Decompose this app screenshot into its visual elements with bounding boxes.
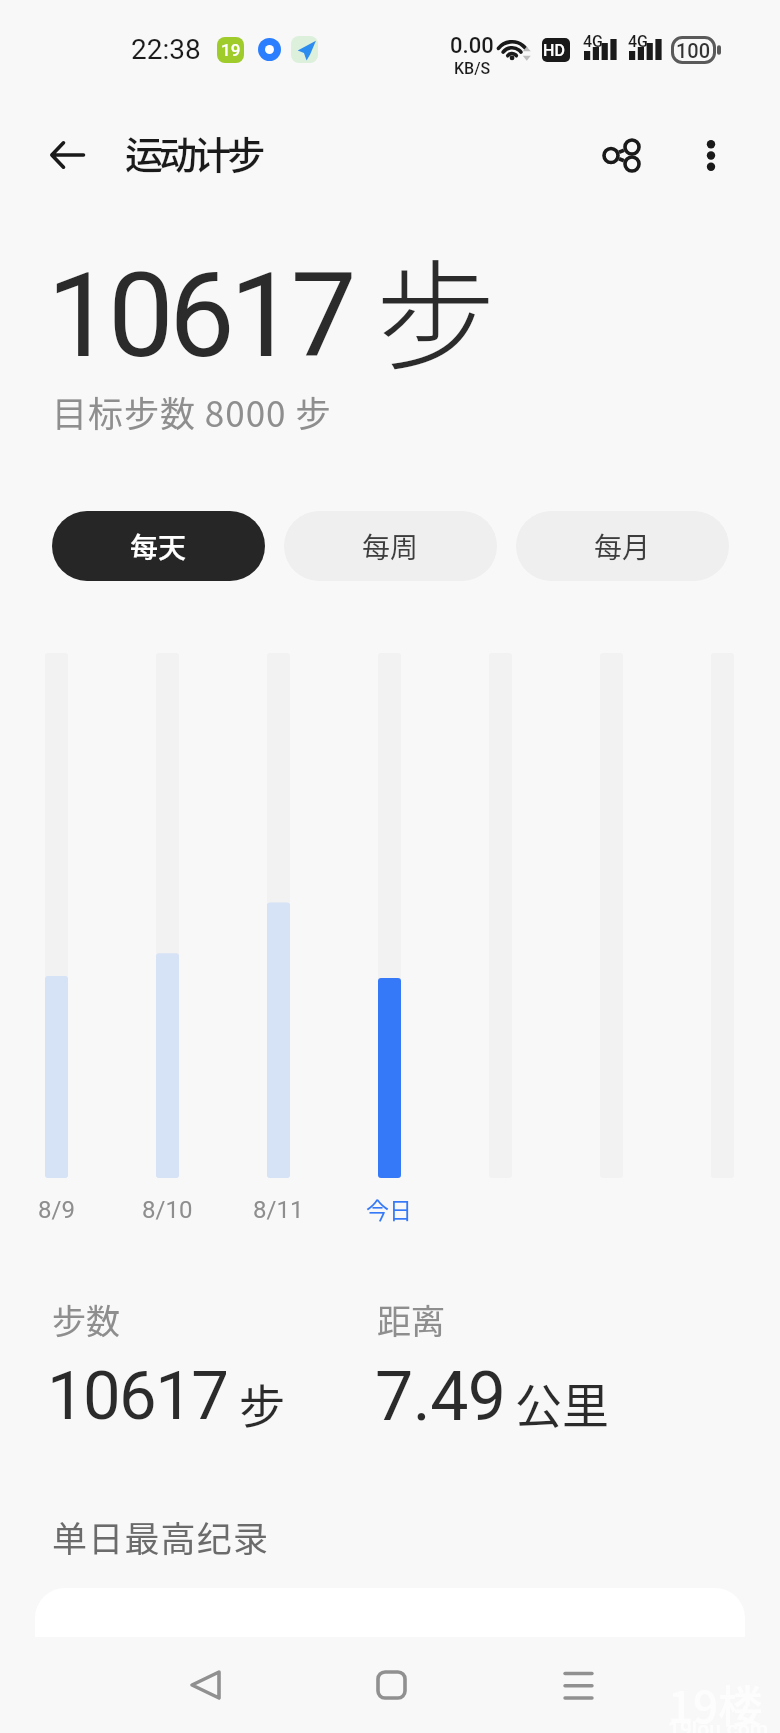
staticText: 10617	[47, 247, 352, 384]
staticText: 19	[221, 40, 241, 60]
staticText: 0.00	[450, 33, 494, 59]
button[interactable]: 每周	[284, 511, 497, 581]
button[interactable]: Back	[159, 1639, 251, 1731]
staticText: 7.49	[375, 1357, 506, 1437]
button[interactable]: Back	[31, 119, 103, 191]
staticText: 步	[376, 222, 495, 394]
staticText: 运动计步	[125, 125, 262, 180]
staticText: 4G	[628, 32, 648, 51]
staticText: HD	[543, 41, 565, 60]
staticText: 100	[676, 39, 711, 62]
button[interactable]: More options	[673, 117, 749, 193]
staticText: 目标步数 8000 步	[52, 386, 332, 437]
staticText: 每周	[362, 526, 419, 567]
staticText: 每月	[594, 526, 651, 567]
staticText: 今日	[366, 1192, 412, 1225]
button[interactable]: 每月	[516, 511, 729, 581]
staticText: 步	[239, 1370, 285, 1437]
staticText: 8/11	[253, 1196, 304, 1224]
staticText: 单日最高纪录	[52, 1511, 270, 1562]
staticText: 公里	[515, 1368, 609, 1436]
staticText: 每天	[130, 526, 187, 567]
staticText: 8/10	[142, 1196, 193, 1224]
staticText: 距离	[377, 1295, 445, 1344]
button[interactable]: Recents	[532, 1639, 624, 1731]
staticText: 8/9	[38, 1196, 75, 1224]
staticText: 步数	[52, 1295, 120, 1344]
button[interactable]: 每天	[52, 511, 265, 581]
button[interactable]: Home	[345, 1639, 437, 1731]
staticText: 10617	[47, 1357, 228, 1436]
button[interactable]: Share	[583, 117, 659, 193]
staticText: 22:38	[131, 33, 201, 66]
staticText: KB/S	[454, 59, 491, 78]
staticText: 4G	[583, 32, 603, 51]
